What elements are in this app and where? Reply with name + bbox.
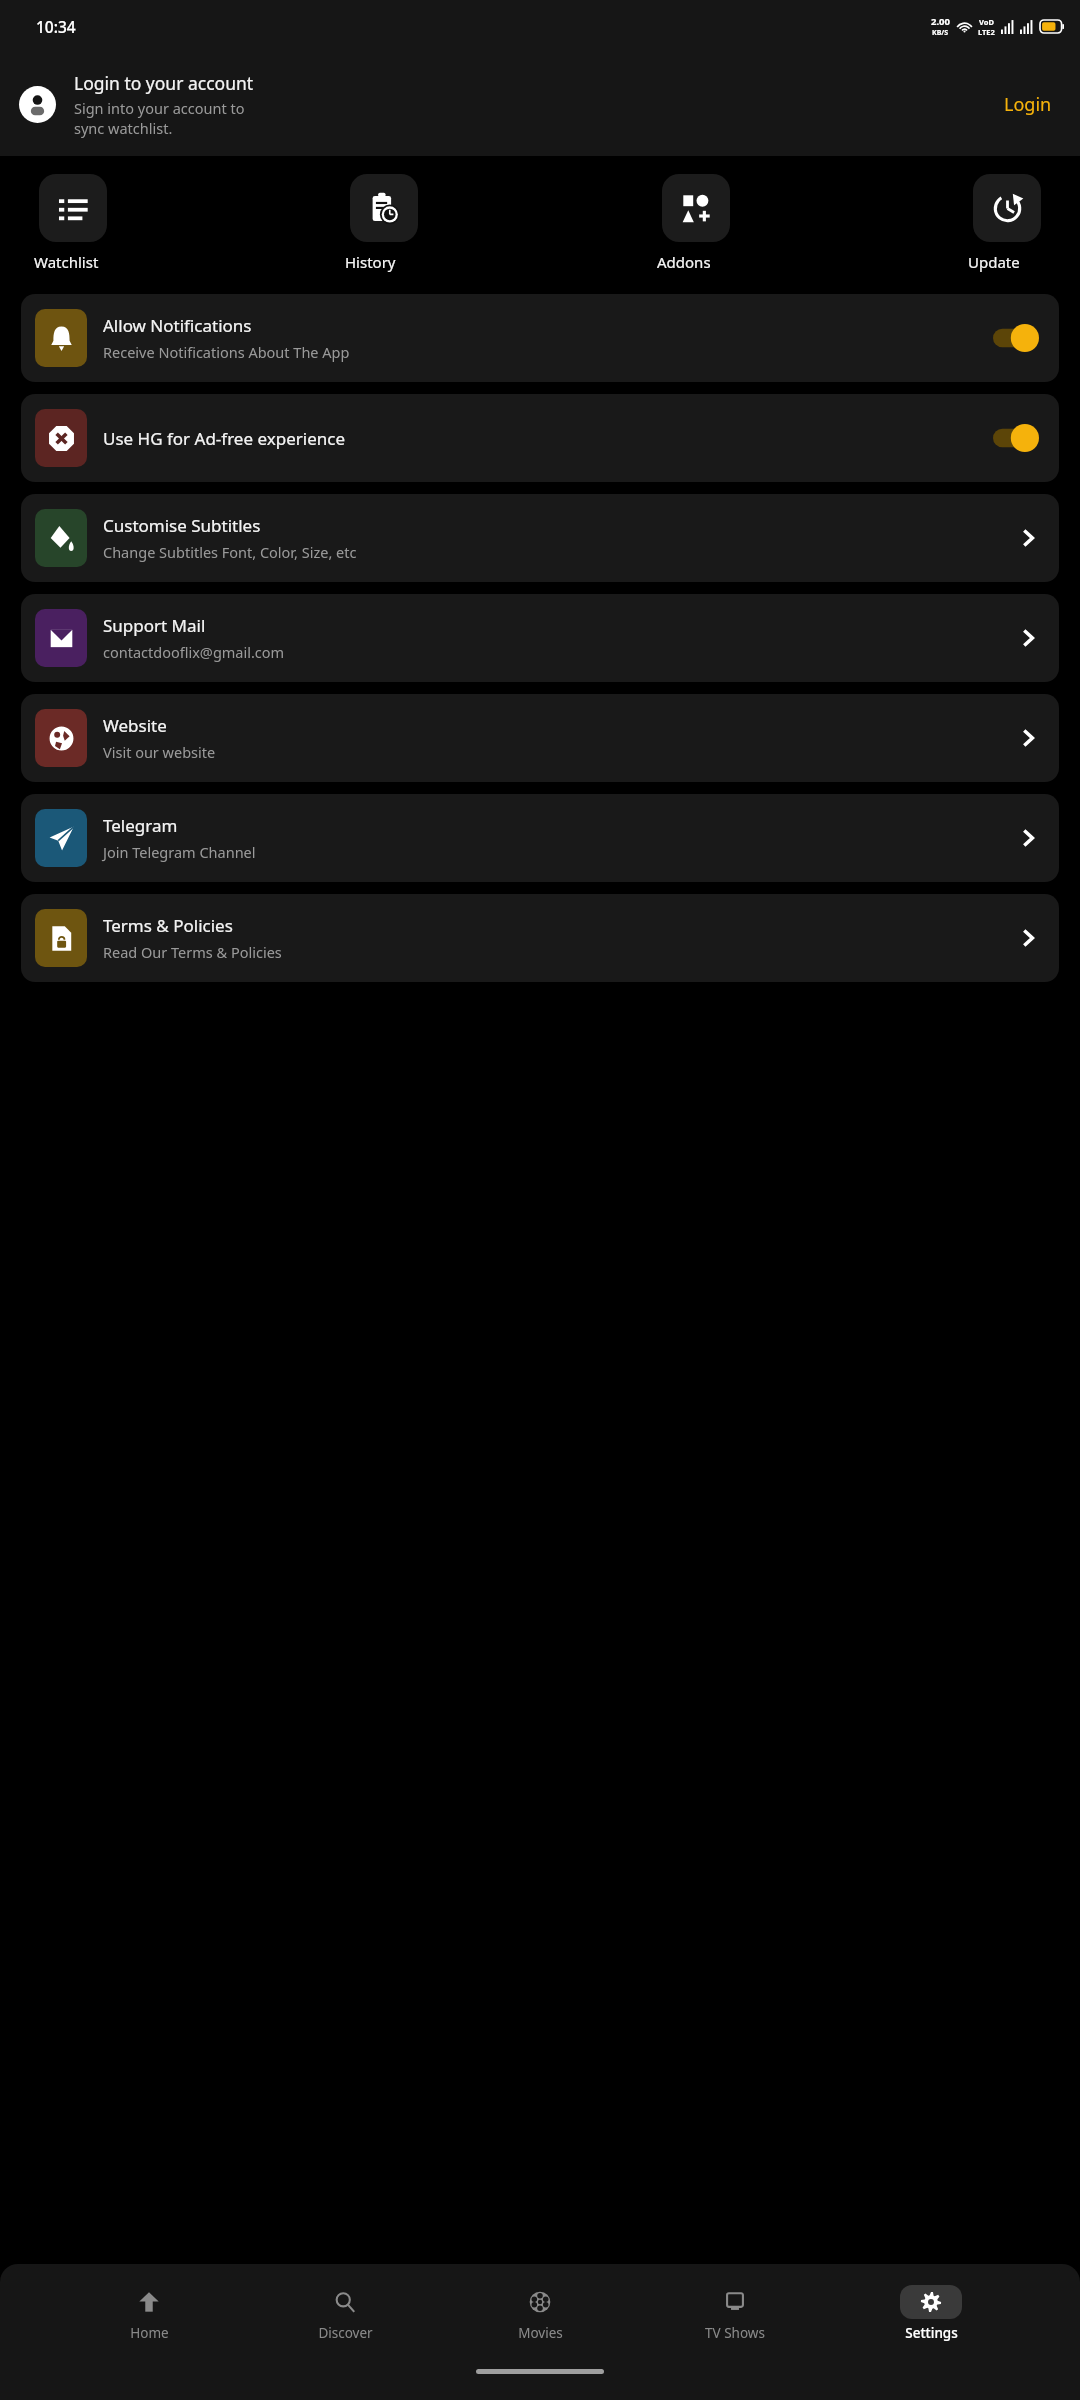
staticText: Read Our Terms & Policies <box>103 942 282 962</box>
button[interactable]: Update <box>968 174 1046 272</box>
button[interactable]: Addons <box>657 174 735 272</box>
staticText: Allow Notifications <box>103 314 252 337</box>
button[interactable]: Website <box>21 694 1059 782</box>
other: Open Customise Subtitles <box>1017 527 1039 549</box>
other: Open Support Mail <box>1017 627 1039 649</box>
staticText: TV Shows <box>705 2324 765 2342</box>
staticText: Discover <box>318 2324 373 2342</box>
button[interactable]: Terms & Policies <box>21 894 1059 982</box>
staticText: Website <box>103 714 167 737</box>
staticText: Home <box>130 2324 169 2342</box>
button[interactable]: Settings <box>885 2285 977 2342</box>
staticText: Login <box>1004 92 1052 117</box>
staticText: Telegram <box>103 814 178 837</box>
staticText: Addons <box>657 252 735 272</box>
other: Open Website <box>1017 727 1039 749</box>
button[interactable]: Allow Notifications <box>21 294 1059 382</box>
staticText: Customise Subtitles <box>103 514 261 537</box>
button[interactable]: Customise Subtitles <box>21 494 1059 582</box>
button[interactable]: Support Mail <box>21 594 1059 682</box>
staticText: Use HG for Ad-free experience <box>103 427 345 450</box>
staticText: Sign into your account to sync watchlist… <box>74 98 245 138</box>
other: Open Telegram <box>1017 827 1039 849</box>
staticText: 10:34 <box>36 16 76 37</box>
button[interactable]: Use HG for Ad-free experience <box>21 394 1059 482</box>
button[interactable]: Watchlist <box>34 174 112 272</box>
staticText: Login to your account <box>74 71 254 95</box>
staticText: Receive Notifications About The App <box>103 342 350 362</box>
staticText: Settings <box>905 2324 958 2342</box>
button[interactable]: Login <box>996 84 1060 125</box>
staticText: Support Mail <box>103 614 206 637</box>
button[interactable]: TV Shows <box>689 2285 781 2342</box>
button[interactable]: Discover <box>299 2285 391 2342</box>
button[interactable]: Toggle <box>993 323 1039 353</box>
staticText: VoD <box>979 17 994 27</box>
button[interactable]: Telegram <box>21 794 1059 882</box>
staticText: 2.00 <box>931 15 950 28</box>
staticText: Update <box>968 252 1046 272</box>
staticText: KB/S <box>932 28 949 38</box>
staticText: LTE2 <box>978 27 995 37</box>
staticText: Movies <box>518 2324 563 2342</box>
staticText: contactdooflix@gmail.com <box>103 642 285 662</box>
button[interactable]: Home <box>103 2285 195 2342</box>
staticText: Watchlist <box>34 252 112 272</box>
button[interactable]: Movies <box>494 2285 586 2342</box>
other: Open Terms & Policies <box>1017 927 1039 949</box>
staticText: History <box>345 252 423 272</box>
button[interactable]: Toggle <box>993 423 1039 453</box>
staticText: Visit our website <box>103 742 216 762</box>
staticText: Join Telegram Channel <box>103 842 256 862</box>
button[interactable]: Login to your account <box>0 52 1080 156</box>
button[interactable]: History <box>345 174 423 272</box>
staticText: Terms & Policies <box>103 914 233 937</box>
staticText: Change Subtitles Font, Color, Size, etc <box>103 542 357 562</box>
